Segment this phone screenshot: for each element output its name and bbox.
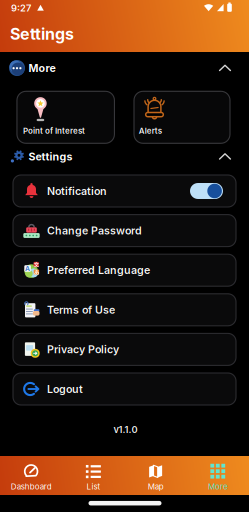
staticText: A: [25, 265, 30, 273]
button[interactable]: More: [0, 59, 249, 77]
staticText: Settings: [28, 150, 72, 163]
staticText: 文: [34, 261, 39, 268]
staticText: Point of Interest: [23, 126, 85, 135]
button[interactable]: Notification: [13, 175, 236, 207]
staticText: Alerts: [139, 126, 162, 135]
button[interactable]: Privacy Policy: [13, 333, 236, 365]
staticText: Settings: [10, 25, 74, 43]
staticText: Privacy Policy: [47, 343, 119, 356]
button[interactable]: Terms of Use: [13, 294, 236, 326]
staticText: Preferred Language: [47, 264, 150, 276]
button[interactable]: More: [187, 456, 249, 495]
button[interactable]: Alerts: [134, 91, 230, 143]
staticText: 9:27: [11, 2, 31, 13]
button[interactable]: Point of Interest: [17, 91, 114, 143]
button[interactable]: List: [62, 456, 124, 495]
button[interactable]: Settings: [0, 147, 249, 165]
button[interactable]: Logout: [13, 373, 236, 405]
staticText: Logout: [47, 383, 83, 395]
staticText: Change Password: [47, 224, 142, 237]
staticText: Notification: [47, 185, 107, 197]
button[interactable]: Change Password: [13, 215, 236, 247]
staticText: Dashboard: [11, 482, 52, 491]
staticText: More: [28, 62, 55, 74]
staticText: More: [208, 482, 228, 491]
staticText: Terms of Use: [47, 303, 115, 316]
button[interactable]: Map: [124, 456, 187, 495]
staticText: List: [86, 482, 100, 491]
staticText: v1.1.0: [113, 424, 137, 435]
button[interactable]: A: [13, 254, 236, 286]
staticText: あ: [34, 269, 39, 275]
button[interactable]: Dashboard: [0, 456, 62, 495]
staticText: Map: [148, 482, 164, 491]
